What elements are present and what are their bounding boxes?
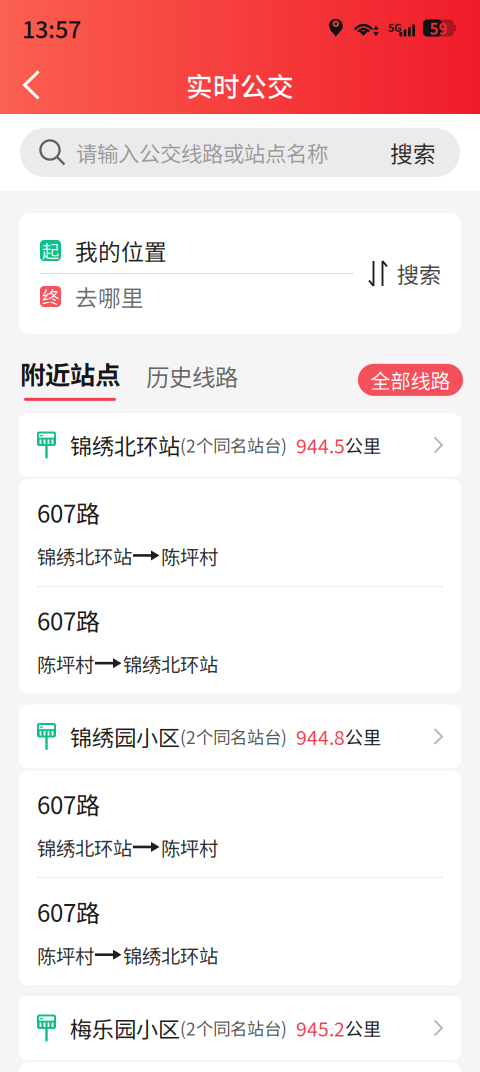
staticText: 945.2 — [296, 1014, 345, 1042]
staticText: 锦绣北环站 — [123, 649, 218, 677]
staticText: 请输入公交线路或站点名称 — [76, 137, 328, 168]
button[interactable]: 全部线路 — [358, 364, 480, 401]
staticText: 公里 — [345, 432, 381, 458]
staticText: (2个同名站台) — [180, 432, 287, 458]
staticText: 607路 — [37, 495, 100, 530]
staticText: 梅乐园小区 — [70, 1012, 180, 1044]
staticText: 锦绣北环站 — [37, 833, 132, 861]
button[interactable]: 607路 — [19, 479, 461, 586]
staticText: 实时公交 — [186, 66, 294, 104]
button[interactable]: Back — [0, 56, 58, 114]
staticText: 附近站点 — [20, 355, 120, 392]
staticText: 607路 — [37, 894, 100, 929]
staticText: 全部线路 — [370, 365, 450, 394]
staticText: 944.5 — [296, 431, 345, 459]
button[interactable]: 请输入公交线路或站点名称 — [0, 114, 480, 191]
staticText: 公里 — [345, 723, 381, 750]
staticText: 陈坪村 — [161, 542, 218, 570]
staticText: 锦绣园小区 — [70, 721, 180, 752]
button[interactable]: 607路 — [19, 587, 461, 693]
staticText: 搜索 — [390, 136, 436, 169]
staticText: 公里 — [345, 1015, 381, 1041]
button[interactable]: 附近站点 — [0, 355, 132, 401]
button[interactable]: 607路 — [19, 878, 461, 985]
staticText: 历史线路 — [146, 359, 238, 393]
button[interactable]: 607路 — [19, 770, 461, 877]
button[interactable]: 锦绣北环站 — [0, 413, 480, 477]
staticText: (2个同名站台) — [180, 1015, 287, 1040]
staticText: 5G — [388, 19, 402, 35]
staticText: 607路 — [37, 603, 100, 637]
staticText: 终 — [42, 284, 59, 309]
button[interactable]: 起 — [40, 228, 354, 273]
staticText: 陈坪村 — [37, 941, 94, 969]
staticText: (2个同名站台) — [180, 724, 287, 749]
staticText: 陈坪村 — [37, 649, 94, 677]
staticText: 13:57 — [22, 11, 81, 45]
staticText: 944.8 — [296, 722, 345, 750]
staticText: 锦绣北环站 — [37, 542, 132, 570]
staticText: 我的位置 — [75, 234, 167, 267]
button[interactable]: 终 — [40, 274, 354, 319]
button[interactable]: 搜索 — [354, 258, 461, 289]
staticText: 59 — [429, 17, 447, 39]
button[interactable]: 历史线路 — [132, 359, 238, 401]
staticText: 607路 — [37, 786, 100, 821]
staticText: 起 — [42, 238, 59, 263]
staticText: 锦绣北环站 — [123, 941, 218, 969]
staticText: 锦绣北环站 — [70, 429, 180, 461]
staticText: 搜索 — [397, 258, 441, 289]
staticText: 去哪里 — [75, 280, 144, 313]
button[interactable]: 锦绣园小区 — [0, 704, 480, 768]
staticText: 陈坪村 — [161, 833, 218, 861]
button[interactable]: 梅乐园小区 — [0, 996, 480, 1060]
